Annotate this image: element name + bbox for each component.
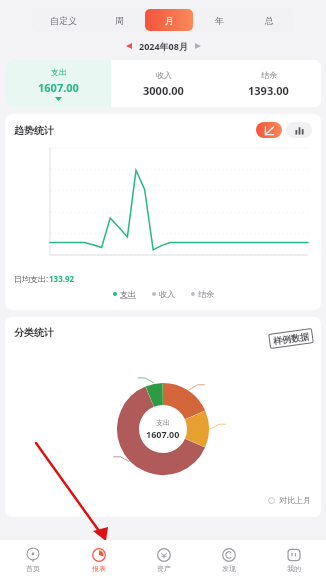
staticText: 趋势统计 — [14, 124, 54, 137]
staticText: 周 — [115, 15, 124, 26]
staticText: 首页 — [26, 564, 40, 573]
staticText: 2024年08月 — [139, 40, 188, 52]
button[interactable]: 资产 — [131, 540, 196, 580]
staticText: 样例数据 — [272, 330, 310, 346]
staticText: 收入 — [159, 289, 175, 299]
button[interactable]: 周 — [95, 9, 143, 31]
staticText: 结余 — [261, 70, 277, 80]
button[interactable]: 收入 — [111, 60, 216, 107]
staticText: 支出 — [156, 418, 170, 427]
staticText: 分类统计 — [14, 326, 54, 339]
button[interactable]: 月 — [145, 9, 193, 31]
staticText: 结余 — [198, 289, 214, 299]
button[interactable]: 年 — [195, 9, 243, 31]
staticText: 报表 — [92, 564, 106, 573]
staticText: 收入 — [156, 70, 172, 80]
button[interactable]: 首页 — [0, 540, 66, 580]
staticText: 发现 — [222, 564, 236, 573]
button[interactable]: Line chart — [256, 122, 282, 138]
button[interactable]: 支出 — [113, 289, 136, 299]
button[interactable]: 我的 — [261, 540, 326, 580]
button[interactable]: Bar chart — [286, 122, 312, 138]
button[interactable]: 报表 — [66, 540, 131, 580]
button[interactable]: 总 — [245, 9, 293, 31]
staticText: 1607.00 — [38, 80, 79, 95]
button[interactable]: 结余 — [191, 289, 214, 299]
button[interactable]: 自定义 — [33, 9, 93, 31]
staticText: 1607.00 — [146, 428, 180, 440]
staticText: 自定义 — [50, 15, 77, 26]
staticText: 133.92 — [49, 273, 75, 284]
staticText: 月 — [165, 15, 174, 26]
button[interactable]: 发现 — [196, 540, 261, 580]
button[interactable]: Previous month — [122, 39, 136, 53]
staticText: 支出 — [51, 67, 67, 77]
staticText: 我的 — [287, 564, 301, 573]
button[interactable]: 结余 — [216, 60, 321, 107]
staticText: 支出 — [120, 289, 136, 299]
staticText: 年 — [215, 15, 224, 26]
staticText: 1393.00 — [248, 83, 289, 98]
staticText: 对比上月 — [279, 495, 311, 505]
button[interactable]: Next month — [191, 39, 205, 53]
button[interactable]: 支出 — [5, 60, 111, 107]
staticText: 总 — [265, 15, 274, 26]
staticText: 3000.00 — [143, 83, 184, 98]
staticText: 日均支出: — [14, 273, 49, 284]
staticText: 资产 — [157, 564, 171, 573]
button[interactable]: 收入 — [152, 289, 175, 299]
button[interactable]: 对比上月 — [268, 495, 311, 505]
